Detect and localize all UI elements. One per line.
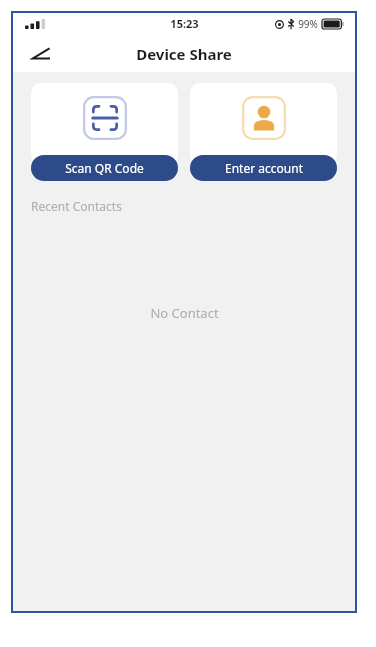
staticText: No Contact: [150, 304, 219, 322]
staticText: Enter account: [225, 160, 303, 176]
button[interactable]: Scan QR Code: [31, 83, 178, 181]
staticText: Device Share: [136, 44, 232, 64]
staticText: 15:23: [170, 16, 199, 31]
button[interactable]: Enter account: [190, 83, 337, 181]
staticText: 99%: [298, 17, 318, 31]
staticText: Recent Contacts: [31, 198, 122, 214]
button[interactable]: Back: [23, 37, 57, 71]
staticText: Scan QR Code: [65, 160, 144, 176]
